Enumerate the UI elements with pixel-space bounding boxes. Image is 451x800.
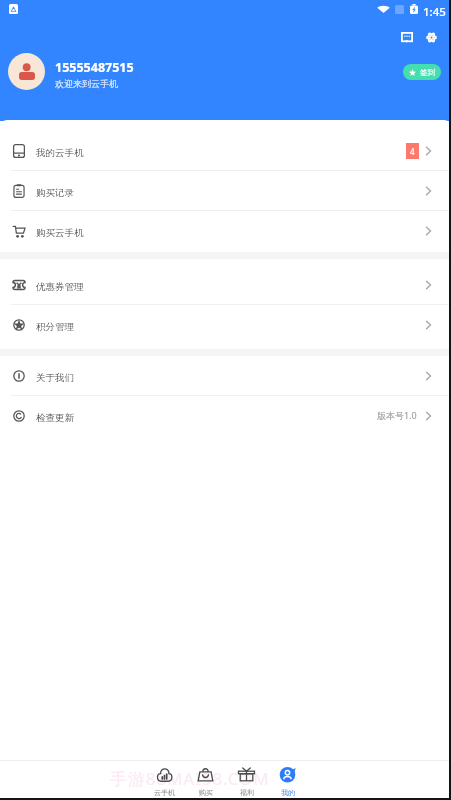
- staticText: 我的云手机: [36, 147, 84, 159]
- staticText: 关于我们: [36, 372, 74, 384]
- staticText: 欢迎来到云手机: [55, 78, 118, 89]
- button[interactable]: Settings: [420, 26, 442, 48]
- staticText: 积分管理: [36, 321, 74, 333]
- staticText: 云手机: [154, 788, 175, 797]
- button[interactable]: 签到: [403, 64, 441, 80]
- staticText: 版本号1.0: [377, 409, 417, 421]
- staticText: 我的: [281, 788, 295, 797]
- button[interactable]: 云手机: [144, 767, 185, 797]
- staticText: 签到: [420, 68, 435, 77]
- button[interactable]: 购买记录: [0, 171, 451, 211]
- button[interactable]: 福利: [226, 767, 267, 797]
- button[interactable]: 购买云手机: [0, 211, 451, 251]
- staticText: 检查更新: [36, 412, 74, 424]
- staticText: 购买云手机: [36, 227, 84, 239]
- staticText: 4: [410, 146, 415, 157]
- button[interactable]: 优惠券管理: [0, 265, 451, 305]
- button[interactable]: 购买: [185, 767, 226, 797]
- button[interactable]: 积分管理: [0, 305, 451, 345]
- staticText: 1:45: [423, 4, 446, 20]
- button[interactable]: 我的云手机: [0, 131, 451, 171]
- button[interactable]: Messages: [396, 26, 418, 48]
- staticText: 优惠券管理: [36, 281, 84, 293]
- staticText: 购买记录: [36, 187, 74, 199]
- staticText: 福利: [240, 788, 254, 797]
- staticText: 手游88MAI58.COM: [110, 767, 270, 790]
- button[interactable]: 检查更新: [0, 396, 451, 436]
- staticText: 15555487515: [55, 59, 134, 76]
- button[interactable]: 关于我们: [0, 356, 451, 396]
- button[interactable]: 我的: [267, 767, 308, 797]
- staticText: 购买: [199, 788, 213, 797]
